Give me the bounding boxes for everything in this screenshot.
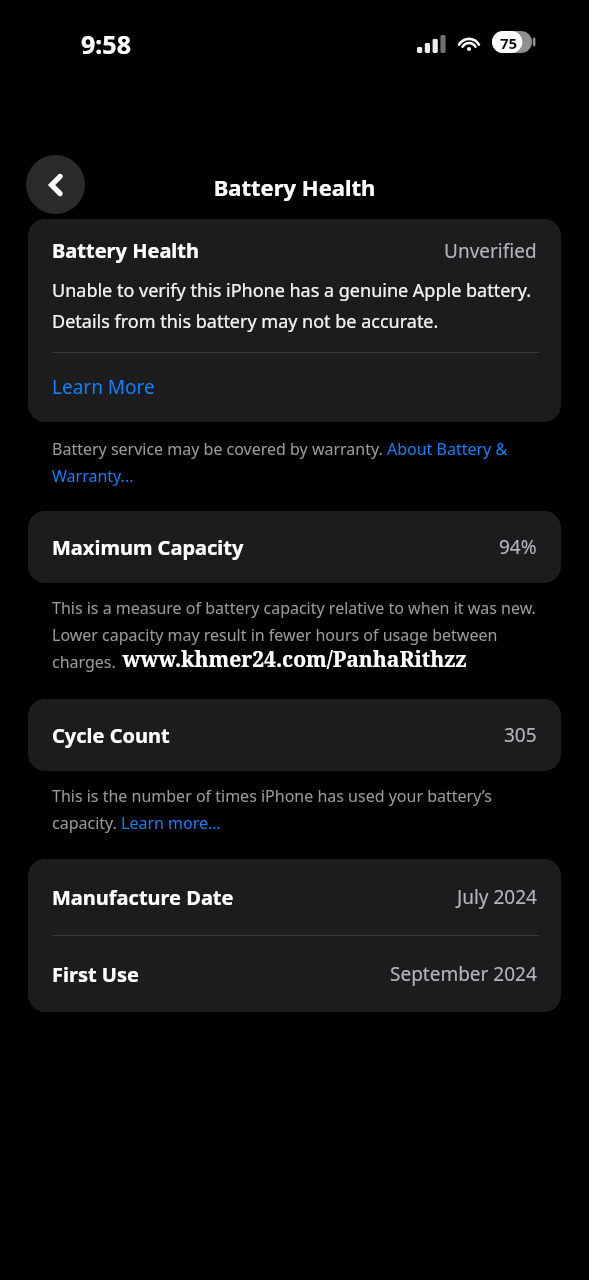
staticText: Learn More — [52, 374, 155, 400]
staticText: First Use — [52, 961, 139, 988]
staticText: Cycle Count — [52, 722, 170, 749]
staticText: 94% — [499, 534, 537, 560]
staticText: 305 — [504, 722, 537, 748]
staticText: Manufacture Date — [52, 884, 234, 911]
staticText: Battery Health — [0, 172, 589, 202]
staticText: Battery Health — [52, 237, 199, 264]
staticText: 9:58 — [81, 27, 131, 61]
button[interactable]: Cycle Count — [28, 699, 561, 771]
staticText: 75 — [500, 33, 518, 53]
button[interactable]: This is the number of times iPhone has u… — [0, 785, 589, 834]
staticText: This is the number of times iPhone has u… — [52, 785, 539, 834]
staticText: This is a measure of battery capacity re… — [52, 597, 539, 673]
staticText: www.khmer24.com/PanhaRithzz — [122, 645, 467, 674]
staticText: Battery service may be covered by warran… — [52, 438, 547, 487]
staticText: July 2024 — [457, 884, 537, 910]
button[interactable]: Maximum Capacity — [28, 511, 561, 583]
staticText: Maximum Capacity — [52, 534, 244, 561]
staticText: Unable to verify this iPhone has a genui… — [52, 278, 539, 333]
button[interactable]: Back — [26, 155, 85, 214]
button[interactable]: First Use — [28, 936, 561, 1012]
staticText: September 2024 — [390, 961, 537, 987]
button[interactable]: Battery service may be covered by warran… — [28, 438, 561, 487]
button[interactable]: Manufacture Date — [28, 859, 561, 935]
button[interactable]: Learn More — [28, 353, 561, 422]
staticText: Unverified — [444, 238, 537, 264]
